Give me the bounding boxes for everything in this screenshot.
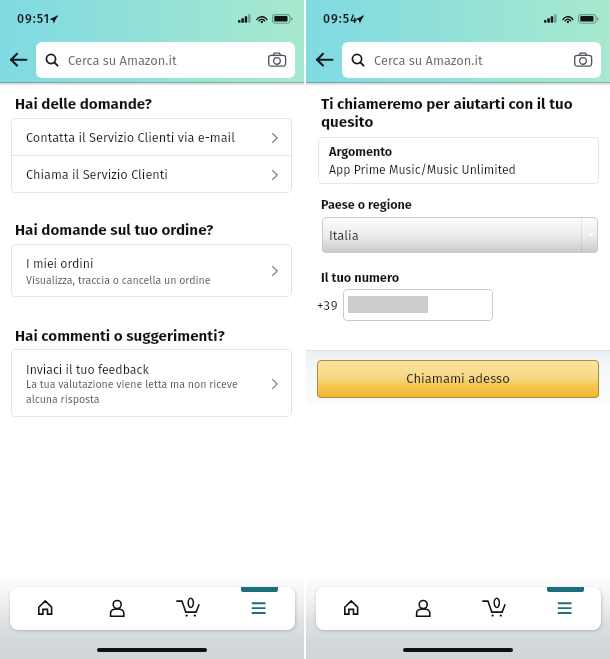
button[interactable]: Contatta il Servizio Clienti via e-mail	[11, 118, 292, 155]
button[interactable]: Home	[10, 587, 81, 630]
button[interactable]: Indietro	[310, 45, 339, 74]
staticText: +39	[317, 298, 339, 314]
staticText: Contatta il Servizio Clienti via e-mail	[26, 130, 235, 145]
staticText: Chiama il Servizio Clienti	[26, 167, 168, 182]
button[interactable]: I miei ordini	[11, 244, 292, 297]
button[interactable]: Home	[316, 587, 387, 630]
staticText: Chiamami adesso	[406, 371, 510, 387]
button[interactable]: Account	[387, 587, 458, 630]
staticText: Paese o regione	[321, 197, 412, 212]
staticText: Italia	[329, 228, 359, 243]
staticText: Ti chiameremo per aiutarti con il tuo	[321, 95, 573, 113]
button[interactable]: Carrello	[153, 587, 224, 630]
staticText: quesito	[321, 113, 374, 131]
staticText: Visualizza, traccia o cancella un ordine	[26, 274, 211, 287]
button[interactable]: Account	[81, 587, 152, 630]
staticText: Argomento	[329, 144, 393, 159]
staticText: 09:54	[323, 12, 358, 27]
button[interactable]: Inviaci il tuo feedback	[11, 349, 292, 417]
button[interactable]: Menu	[224, 587, 295, 630]
button[interactable]: Chiama il Servizio Clienti	[11, 155, 292, 192]
staticText: Hai domande sul tuo ordine?	[15, 221, 214, 239]
button[interactable]: Chiamami adesso	[317, 360, 599, 398]
button[interactable]: Cerca su Amazon.it	[36, 42, 295, 78]
staticText: alcuna risposta	[26, 393, 100, 406]
staticText: Il tuo numero	[321, 270, 400, 285]
button[interactable]: Argomento	[318, 137, 599, 184]
staticText: La tua valutazione viene letta ma non ri…	[26, 378, 238, 391]
staticText: Cerca su Amazon.it	[68, 53, 177, 68]
staticText: Hai commenti o suggerimenti?	[15, 327, 225, 345]
button[interactable]	[343, 289, 493, 321]
staticText: I miei ordini	[26, 256, 94, 271]
button[interactable]: Carrello	[459, 587, 530, 630]
staticText: Cerca su Amazon.it	[374, 53, 483, 68]
staticText: Hai delle domande?	[15, 95, 152, 113]
button[interactable]: Indietro	[4, 45, 33, 74]
staticText: App Prime Music/Music Unlimited	[329, 163, 516, 178]
button[interactable]: Cerca su Amazon.it	[342, 42, 601, 78]
button[interactable]: Italia	[322, 217, 598, 253]
button[interactable]: Menu	[530, 587, 601, 630]
staticText: 09:51	[17, 12, 50, 27]
staticText: Inviaci il tuo feedback	[26, 362, 149, 377]
